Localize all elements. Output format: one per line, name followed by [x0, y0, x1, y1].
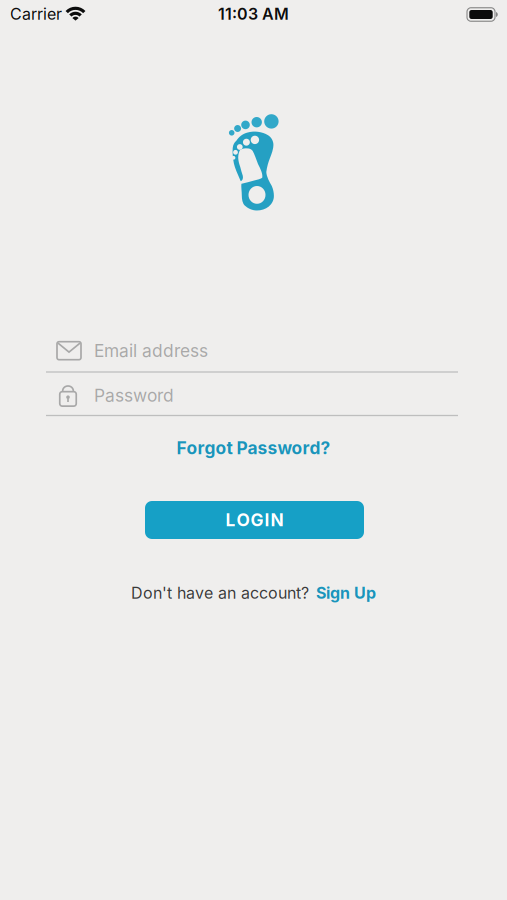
staticText: L O G I N [225, 510, 283, 530]
button[interactable]: Email address [46, 330, 458, 373]
staticText: 11:03 AM [218, 5, 289, 23]
button[interactable]: Forgot Password? [176, 438, 330, 458]
button[interactable]: Password [46, 373, 458, 416]
staticText: Carrier [10, 5, 62, 23]
button[interactable]: L O G I N [145, 501, 364, 539]
staticText: Sign Up [316, 584, 376, 602]
staticText: Forgot Password? [176, 438, 330, 458]
button[interactable]: Sign Up [316, 584, 376, 602]
staticText: Email address [94, 340, 208, 361]
staticText: Don't have an account? [131, 584, 309, 602]
staticText: Password [94, 385, 174, 406]
